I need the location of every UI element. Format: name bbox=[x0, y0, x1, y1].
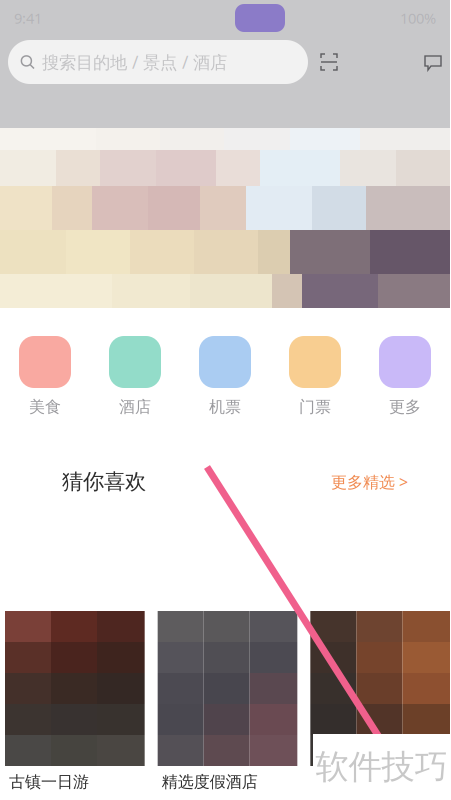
button[interactable]: 更多精选 > bbox=[331, 471, 408, 492]
staticText: 古镇一日游 bbox=[9, 772, 89, 792]
button[interactable]: 更多 bbox=[369, 336, 441, 417]
button[interactable]: 搜索目的地 / 景点 / 酒店 bbox=[8, 40, 308, 84]
button[interactable]: 古镇一日游 bbox=[5, 612, 145, 800]
button[interactable]: Messages bbox=[424, 53, 442, 71]
button[interactable]: 美食 bbox=[9, 336, 81, 417]
staticText: 更多 bbox=[389, 397, 421, 417]
staticText: 更多精选 > bbox=[331, 471, 408, 492]
button[interactable]: Promotion banner bbox=[0, 128, 450, 308]
staticText: 精选度假酒店 bbox=[162, 772, 258, 792]
staticText: 周边亲子游 bbox=[314, 772, 394, 792]
button[interactable]: 酒店 bbox=[99, 336, 171, 417]
staticText: 门票 bbox=[299, 397, 331, 417]
staticText: 100% bbox=[400, 8, 436, 28]
button[interactable]: 机票 bbox=[189, 336, 261, 417]
button[interactable]: 周边亲子游 bbox=[310, 612, 450, 800]
button[interactable]: Scan bbox=[320, 53, 338, 71]
staticText: 酒店 bbox=[119, 397, 151, 417]
button[interactable]: 门票 bbox=[279, 336, 351, 417]
staticText: 软件技巧 bbox=[315, 746, 447, 787]
staticText: 搜索目的地 / 景点 / 酒店 bbox=[42, 50, 227, 73]
button[interactable]: 精选度假酒店 bbox=[158, 612, 297, 800]
staticText: 9:41 bbox=[14, 8, 42, 28]
staticText: 机票 bbox=[209, 397, 241, 417]
staticText: 美食 bbox=[29, 397, 61, 417]
staticText: 猜你喜欢 bbox=[62, 469, 146, 495]
